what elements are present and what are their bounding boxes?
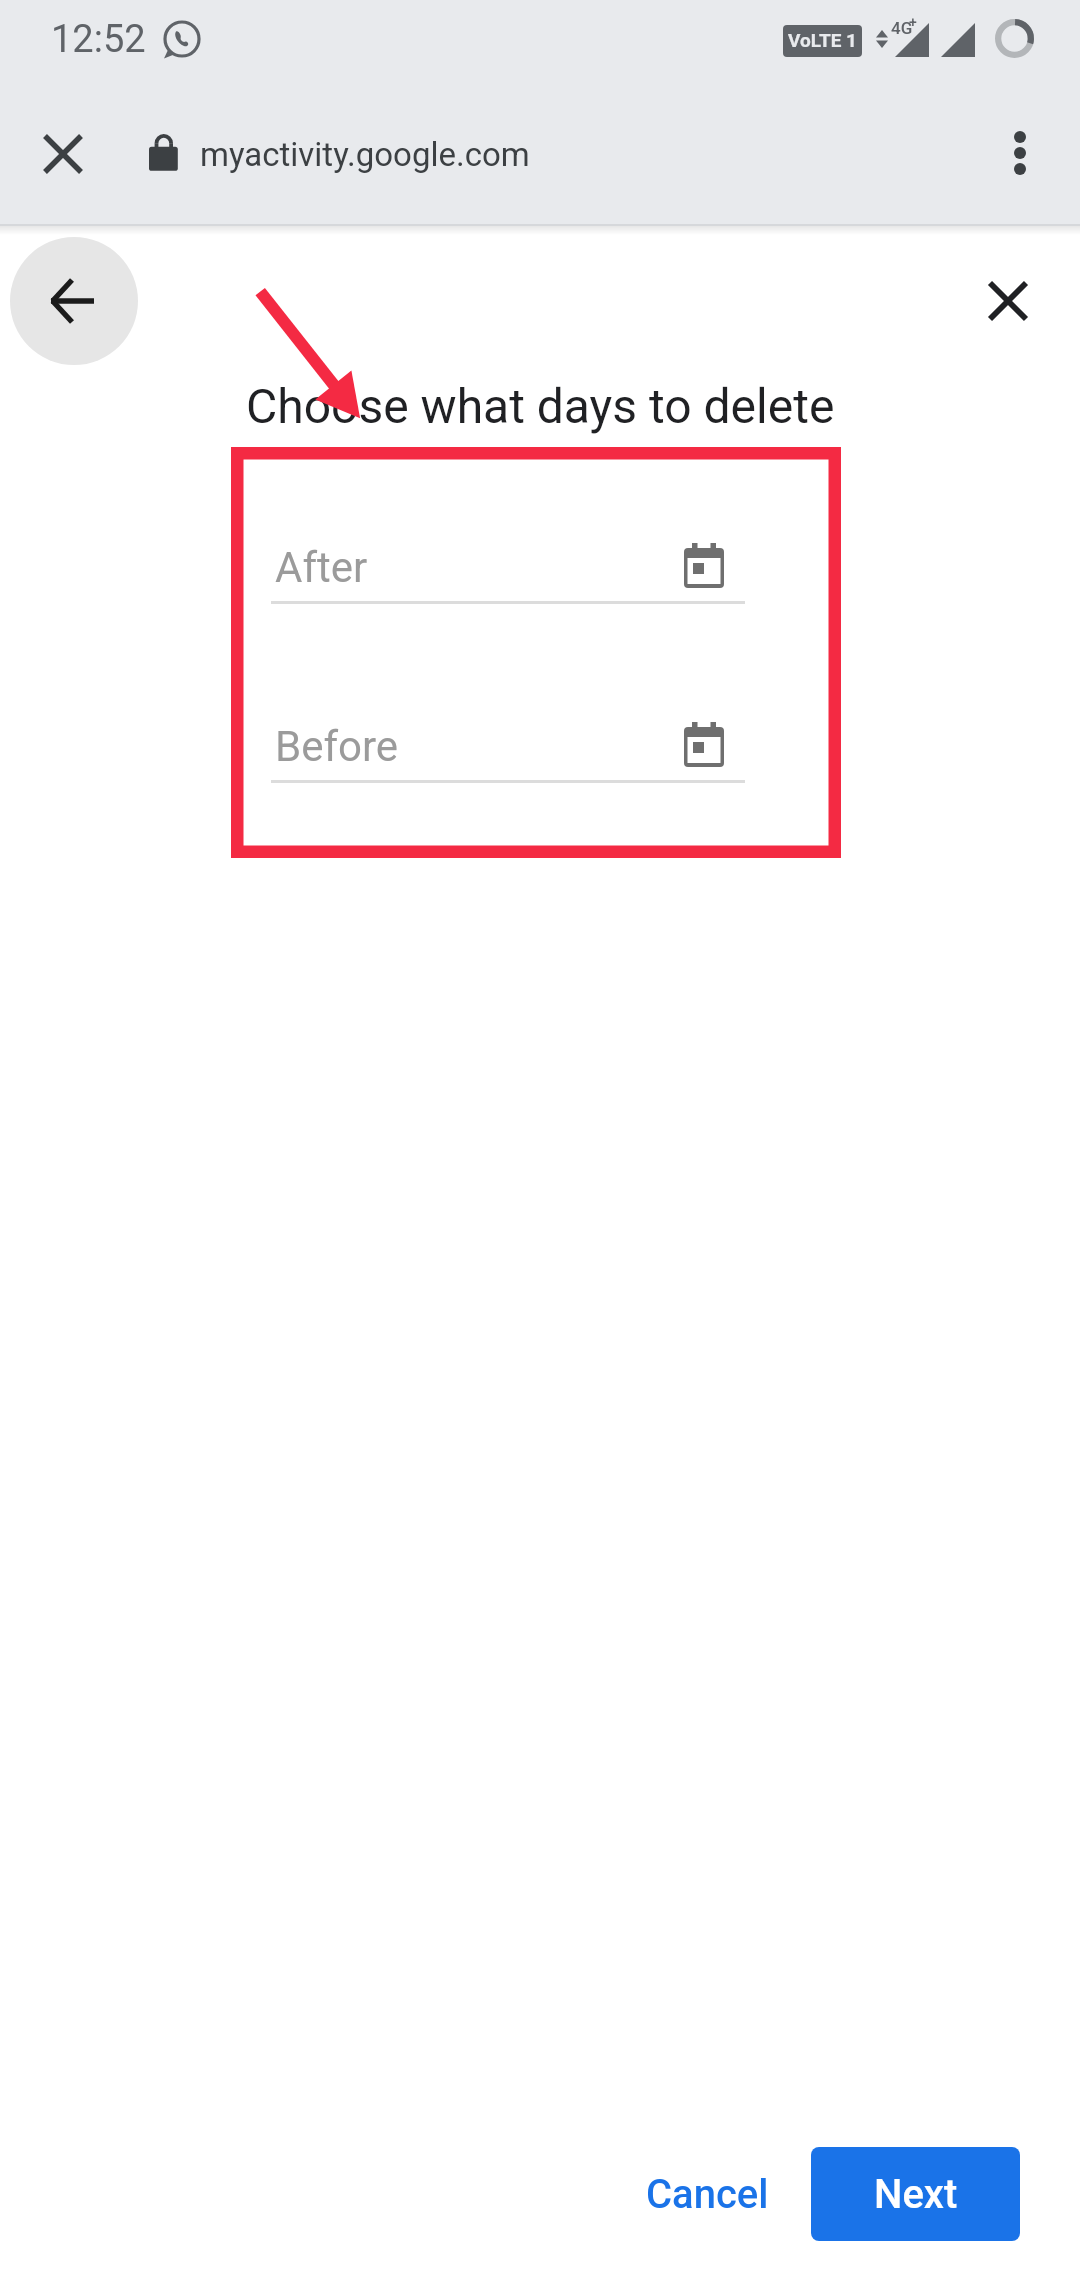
button[interactable]: After: [271, 525, 745, 629]
button[interactable]: Pick After date: [672, 531, 736, 599]
staticText: myactivity.google.com: [200, 135, 530, 174]
staticText: VoLTE 1: [788, 29, 857, 51]
button[interactable]: Back: [10, 237, 138, 365]
button[interactable]: More options: [979, 112, 1061, 194]
button[interactable]: Before: [271, 704, 745, 808]
staticText: Next: [874, 2171, 958, 2218]
staticText: After: [275, 543, 368, 592]
button[interactable]: Pick Before date: [672, 710, 736, 778]
staticText: +: [909, 14, 917, 30]
button[interactable]: Close: [963, 256, 1052, 345]
staticText: Before: [275, 722, 399, 771]
staticText: 12:52: [51, 17, 146, 62]
button[interactable]: Cancel: [618, 2157, 797, 2232]
button[interactable]: Next: [811, 2147, 1020, 2241]
staticText: Cancel: [646, 2171, 769, 2218]
button[interactable]: Close tab: [22, 113, 104, 195]
staticText: Choose what days to delete: [246, 378, 835, 434]
staticText: 4G: [891, 18, 913, 38]
